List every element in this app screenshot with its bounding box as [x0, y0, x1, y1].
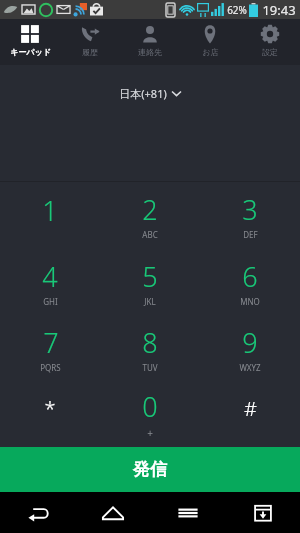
button[interactable]: 0 — [100, 381, 200, 447]
button[interactable]: 日本(+81) — [109, 82, 191, 105]
button[interactable]: * — [0, 381, 100, 447]
staticText: GHI — [43, 296, 58, 307]
staticText: ABC — [142, 229, 158, 240]
button[interactable]: 3 — [200, 182, 300, 249]
button[interactable]: 2 — [100, 182, 200, 249]
staticText: 日本(+81) — [119, 86, 167, 101]
button[interactable]: 1 — [0, 182, 100, 249]
staticText: WXYZ — [239, 362, 261, 373]
staticText: PQRS — [40, 362, 61, 373]
button[interactable]: 履歴 — [60, 19, 120, 65]
button[interactable]: Recent apps — [150, 492, 225, 533]
button[interactable]: Back — [0, 492, 75, 533]
staticText: 62% — [227, 3, 247, 17]
button[interactable]: 6 — [200, 249, 300, 315]
button[interactable]: 4 — [0, 249, 100, 315]
staticText: JKL — [144, 296, 156, 307]
staticText: 履歴 — [82, 47, 98, 57]
staticText: DEF — [243, 229, 258, 240]
staticText: * — [44, 395, 56, 422]
button[interactable]: # — [200, 381, 300, 447]
button[interactable]: 5 — [100, 249, 200, 315]
button[interactable]: キーパッド — [0, 19, 60, 65]
button[interactable]: Home — [75, 492, 150, 533]
staticText: 3 — [242, 191, 258, 228]
staticText: 設定 — [262, 47, 278, 57]
button[interactable]: 発信 — [0, 447, 300, 492]
staticText: 5 — [142, 258, 158, 295]
staticText: 0 — [142, 388, 158, 425]
staticText: 8 — [142, 324, 158, 361]
button[interactable]: 7 — [0, 315, 100, 381]
button[interactable]: 連絡先 — [120, 19, 180, 65]
staticText: MNO — [240, 296, 260, 307]
staticText: 7 — [43, 324, 59, 361]
button[interactable]: Download — [225, 492, 300, 533]
button[interactable]: お店 — [180, 19, 240, 65]
staticText: 発信 — [133, 459, 167, 480]
staticText: # — [244, 395, 257, 422]
staticText: TUV — [142, 362, 158, 373]
staticText: + — [147, 426, 153, 440]
staticText: 19:43 — [262, 1, 296, 19]
staticText: 6 — [242, 258, 258, 295]
staticText: 4 — [42, 258, 58, 295]
button[interactable]: 9 — [200, 315, 300, 381]
staticText: お店 — [202, 47, 219, 57]
staticText: キーパッド — [10, 47, 51, 57]
staticText: 連絡先 — [138, 47, 162, 57]
staticText: 9 — [242, 324, 258, 361]
staticText: 2 — [142, 191, 158, 228]
button[interactable]: 設定 — [240, 19, 300, 65]
button[interactable]: 8 — [100, 315, 200, 381]
staticText: 1 — [42, 192, 58, 229]
